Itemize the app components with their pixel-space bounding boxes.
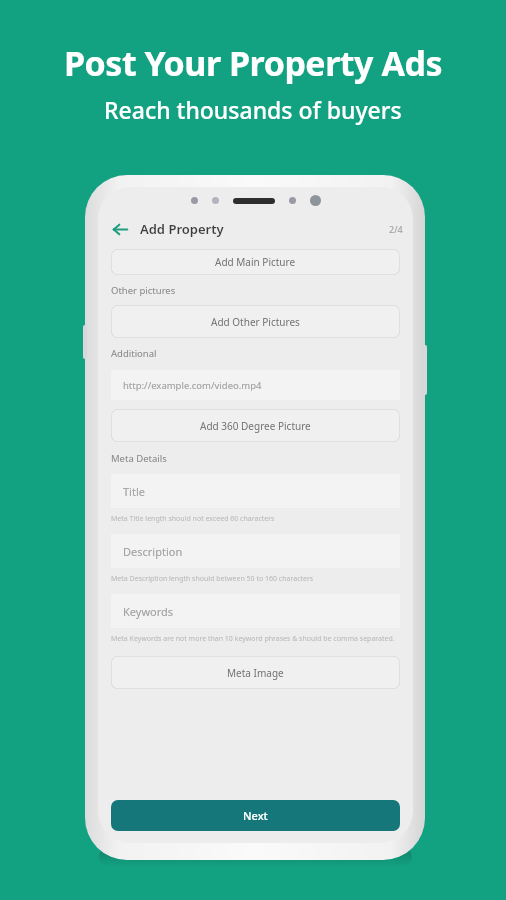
button[interactable]: Keywords — [111, 594, 400, 628]
staticText: Add Other Pictures — [211, 315, 300, 329]
staticText: Add 360 Degree Picture — [200, 419, 311, 433]
button[interactable]: Back — [108, 217, 132, 241]
staticText: Title — [123, 484, 145, 499]
staticText: Meta Image — [227, 666, 284, 680]
staticText: Add Property — [140, 220, 224, 238]
button[interactable]: Add 360 Degree Picture — [111, 409, 400, 442]
staticText: Additional — [111, 347, 157, 360]
staticText: http://example.com/video.mp4 — [123, 379, 262, 392]
button[interactable]: Meta Image — [111, 656, 400, 689]
staticText: Post Your Property Ads — [64, 40, 442, 86]
button[interactable]: Add Other Pictures — [111, 305, 400, 338]
button[interactable]: http://example.com/video.mp4 — [111, 370, 400, 400]
staticText: Reach thousands of buyers — [104, 94, 402, 125]
button[interactable]: Next — [111, 800, 400, 831]
button[interactable]: Title — [111, 474, 400, 508]
staticText: Meta Description length should between 5… — [111, 574, 400, 584]
staticText: Meta Keywords are not more than 10 keywo… — [111, 634, 400, 644]
staticText: Meta Title length should not exceed 60 c… — [111, 514, 400, 524]
button[interactable]: Description — [111, 534, 400, 568]
staticText: 2/4 — [389, 223, 403, 235]
staticText: Meta Details — [111, 452, 167, 465]
button[interactable]: Add Main Picture — [111, 249, 400, 275]
staticText: Next — [243, 808, 268, 823]
staticText: Keywords — [123, 604, 174, 619]
staticText: Other pictures — [111, 284, 176, 297]
staticText: Description — [123, 544, 183, 559]
staticText: Add Main Picture — [215, 255, 296, 269]
